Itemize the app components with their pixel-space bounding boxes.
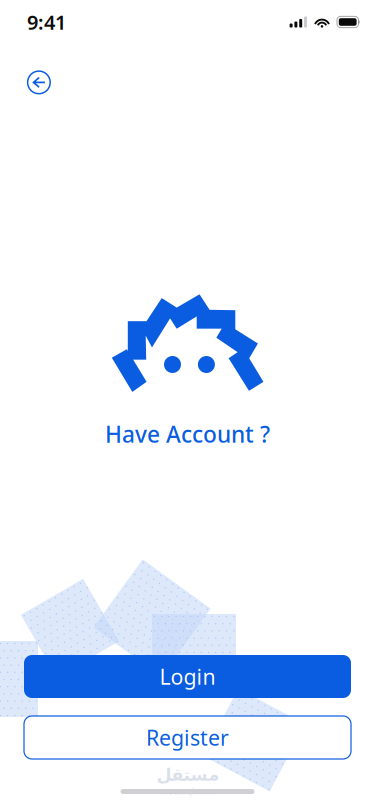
button[interactable]: Back bbox=[17, 61, 61, 105]
staticText: Register bbox=[146, 723, 229, 752]
staticText: Have Account ? bbox=[105, 419, 270, 449]
staticText: Login bbox=[159, 662, 215, 691]
staticText: مستقل bbox=[156, 765, 219, 785]
staticText: 9:41 bbox=[27, 9, 66, 35]
button[interactable]: Register bbox=[24, 716, 351, 759]
staticText: mostaql.com bbox=[159, 785, 216, 797]
button[interactable]: Login bbox=[24, 655, 351, 698]
